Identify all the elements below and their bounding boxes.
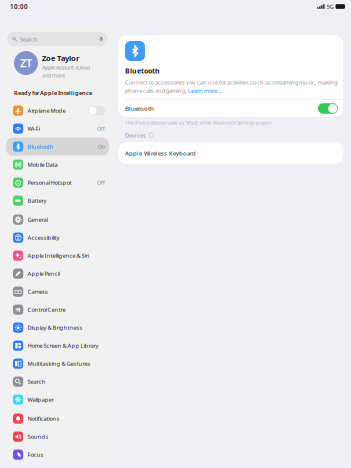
staticText: Devices bbox=[125, 131, 146, 139]
staticText: Sounds bbox=[27, 433, 48, 440]
button[interactable]: Battery bbox=[6, 192, 109, 210]
staticText: 5G bbox=[326, 2, 333, 10]
staticText: Connect to accessories you can use for a… bbox=[125, 78, 337, 86]
button[interactable]: Sounds bbox=[6, 428, 109, 446]
button[interactable]: Camera bbox=[6, 283, 109, 301]
staticText: General bbox=[27, 216, 47, 223]
button[interactable]: Wallpaper bbox=[6, 391, 109, 409]
staticText: Bluetooth bbox=[125, 104, 154, 113]
staticText: Bluetooth bbox=[27, 143, 53, 150]
staticText: Search bbox=[27, 378, 45, 385]
staticText: phone calls and gaming. bbox=[125, 87, 188, 94]
staticText: Zoe Taylor bbox=[42, 53, 79, 63]
staticText: Camera bbox=[27, 288, 47, 295]
staticText: Wallpaper bbox=[27, 396, 53, 403]
button[interactable]: Bluetooth bbox=[6, 138, 109, 156]
button[interactable]: Wi-Fi bbox=[6, 120, 109, 138]
staticText: Battery bbox=[27, 197, 46, 204]
staticText: Accessibility bbox=[27, 234, 59, 241]
staticText: Apple Wireless Keyboard bbox=[125, 149, 196, 157]
staticText: Apple Pencil bbox=[27, 270, 59, 277]
staticText: Control Centre bbox=[27, 306, 65, 313]
staticText: Multitasking & Gestures bbox=[27, 360, 90, 367]
button[interactable]: Multitasking & Gestures bbox=[6, 355, 109, 373]
button[interactable]: Apple Pencil bbox=[6, 265, 109, 283]
button[interactable]: Focus bbox=[6, 446, 109, 464]
staticText: Mobile Data bbox=[27, 161, 57, 168]
staticText: ZT bbox=[20, 56, 32, 70]
button[interactable]: Bluetooth bbox=[118, 100, 343, 117]
button[interactable]: Apple Wireless Keyboard bbox=[118, 142, 343, 164]
staticText: Apple Intelligence & Siri bbox=[27, 252, 88, 259]
button[interactable]: Apple Intelligence & Siri bbox=[6, 247, 109, 265]
staticText: Display & Brightness bbox=[27, 324, 82, 331]
button[interactable]: General bbox=[6, 211, 109, 229]
staticText: Off bbox=[97, 125, 105, 132]
staticText: and more bbox=[42, 72, 65, 79]
staticText: Notifications bbox=[27, 415, 59, 422]
button[interactable]: ZT bbox=[3, 52, 115, 78]
staticText: 10:00 bbox=[10, 2, 28, 11]
staticText: Search bbox=[20, 35, 38, 43]
staticText: Airplane Mode bbox=[27, 107, 65, 114]
staticText: Home Screen & App Library bbox=[27, 342, 98, 349]
staticText: Off bbox=[97, 179, 105, 186]
button[interactable]: Notifications bbox=[6, 410, 109, 428]
staticText: Ready for Apple Intelligence bbox=[14, 89, 92, 97]
staticText: Wi-Fi bbox=[27, 125, 39, 132]
staticText: Personal Hotspot bbox=[27, 179, 71, 186]
button[interactable]: Home Screen & App Library bbox=[6, 337, 109, 355]
button[interactable]: Control Centre bbox=[6, 301, 109, 319]
button[interactable]: Search bbox=[7, 32, 108, 46]
staticText: Learn more… bbox=[188, 87, 221, 94]
staticText: This iPad is discoverable as “iPad” whil… bbox=[125, 120, 273, 126]
staticText: Apple Account, iCloud bbox=[42, 64, 90, 71]
button[interactable]: Personal Hotspot bbox=[6, 174, 109, 192]
button[interactable]: Airplane Mode bbox=[6, 102, 109, 120]
button[interactable]: Accessibility bbox=[6, 229, 109, 247]
staticText: Bluetooth bbox=[125, 66, 160, 75]
staticText: Focus bbox=[27, 451, 43, 458]
button[interactable]: Search bbox=[6, 373, 109, 391]
button[interactable]: Mobile Data bbox=[6, 156, 109, 174]
staticText: On bbox=[98, 143, 105, 150]
button[interactable]: Display & Brightness bbox=[6, 319, 109, 337]
